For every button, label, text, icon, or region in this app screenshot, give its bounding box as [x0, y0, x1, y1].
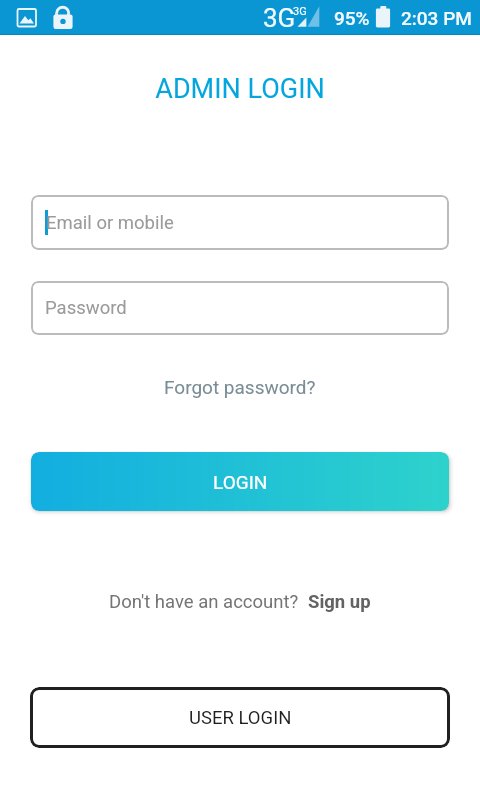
staticText: 3G — [293, 5, 307, 18]
staticText: USER LOGIN — [189, 707, 292, 729]
staticText: Email or mobile — [46, 212, 174, 234]
button[interactable]: Password — [31, 281, 449, 335]
staticText: 95% — [334, 7, 370, 29]
other: Screenshot captured — [14, 4, 40, 30]
staticText: Don't have an account? — [109, 591, 299, 613]
staticText: Sign up — [308, 591, 371, 613]
button[interactable]: Email or mobile — [31, 195, 449, 250]
staticText: 3G — [263, 3, 296, 33]
staticText: ADMIN LOGIN — [0, 73, 480, 105]
button[interactable]: LOGIN — [31, 452, 449, 511]
staticText: Forgot password? — [164, 376, 316, 398]
staticText: Password — [45, 297, 127, 319]
button[interactable]: Sign up — [308, 587, 371, 617]
button[interactable]: USER LOGIN — [30, 687, 450, 748]
button[interactable]: Forgot password? — [148, 371, 332, 403]
staticText: LOGIN — [213, 471, 268, 493]
other: Secure connection — [50, 2, 76, 28]
staticText: 2:03 PM — [401, 7, 472, 29]
